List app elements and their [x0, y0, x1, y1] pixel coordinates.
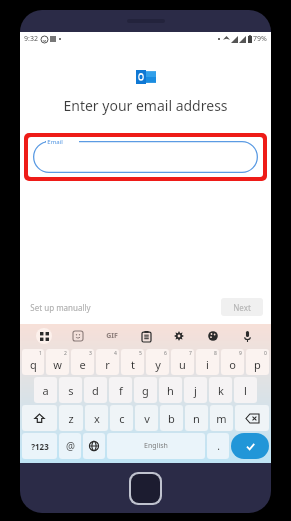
button[interactable]: ?123 [22, 433, 57, 459]
staticText: r [105, 357, 110, 372]
staticText: 3 [89, 350, 92, 357]
button[interactable]: Stickers [68, 326, 88, 346]
button[interactable]: a [34, 377, 57, 403]
staticText: p [254, 357, 261, 372]
button[interactable]: Clipboard [136, 326, 156, 346]
button[interactable]: f [109, 377, 132, 403]
staticText: q [30, 357, 37, 372]
button[interactable]: Settings [169, 326, 189, 346]
staticText: a [42, 383, 49, 398]
staticText: 4 [114, 350, 117, 357]
staticText: d [92, 383, 99, 398]
button[interactable]: 2 [46, 349, 69, 375]
staticText: w [53, 357, 62, 372]
button[interactable]: l [234, 377, 257, 403]
button[interactable]: Shift [22, 405, 57, 431]
staticText: b [168, 411, 175, 426]
staticText: ?123 [31, 441, 49, 452]
button[interactable]: @ [59, 433, 81, 459]
button[interactable]: Apps [34, 326, 54, 346]
button[interactable]: 5 [121, 349, 144, 375]
staticText: m [216, 411, 227, 426]
staticText: o [229, 357, 236, 372]
button[interactable]: Change language [83, 433, 105, 459]
button[interactable]: 3 [71, 349, 94, 375]
staticText: g [142, 383, 149, 398]
staticText: 9:32 [24, 34, 38, 44]
staticText: Email [47, 138, 63, 146]
button[interactable]: Set up manually [28, 300, 93, 315]
staticText: 2 [64, 350, 67, 357]
button[interactable]: m [210, 405, 233, 431]
button[interactable]: GIF [102, 326, 122, 346]
staticText: t [131, 357, 135, 372]
button[interactable]: b [160, 405, 183, 431]
staticText: s [68, 383, 74, 398]
button[interactable]: h [159, 377, 182, 403]
button[interactable]: Enter [231, 433, 269, 459]
staticText: . [217, 439, 220, 453]
staticText: Set up manually [30, 302, 91, 313]
staticText: v [144, 411, 150, 426]
button[interactable]: j [184, 377, 207, 403]
staticText: 6 [164, 350, 167, 357]
button[interactable]: d [84, 377, 107, 403]
staticText: i [206, 357, 209, 372]
button[interactable]: Home [131, 474, 160, 503]
button[interactable]: z [59, 405, 83, 431]
button[interactable]: Voice input [237, 326, 257, 346]
staticText: x [94, 411, 100, 426]
staticText: English [144, 441, 168, 451]
staticText: f [119, 383, 123, 398]
staticText: 7 [189, 350, 192, 357]
staticText: 8 [214, 350, 217, 357]
button[interactable]: Backspace [235, 405, 269, 431]
button[interactable]: 6 [146, 349, 169, 375]
button[interactable]: s [59, 377, 82, 403]
button[interactable]: 4 [96, 349, 119, 375]
staticText: l [244, 383, 247, 398]
staticText: GIF [106, 331, 118, 341]
staticText: 79% [253, 34, 267, 44]
button[interactable]: 8 [196, 349, 219, 375]
button[interactable]: n [185, 405, 208, 431]
button[interactable]: g [134, 377, 157, 403]
staticText: j [194, 383, 197, 398]
button[interactable]: v [135, 405, 158, 431]
staticText: @ [66, 439, 75, 453]
staticText: h [167, 383, 174, 398]
button[interactable]: 7 [171, 349, 194, 375]
staticText: 0 [264, 350, 267, 357]
button[interactable]: Next [221, 298, 263, 316]
button[interactable]: English [107, 433, 205, 459]
button[interactable]: Email [33, 141, 258, 173]
button[interactable]: . [207, 433, 229, 459]
staticText: 9 [239, 350, 242, 357]
button[interactable]: k [209, 377, 232, 403]
staticText: u [179, 357, 186, 372]
button[interactable]: Themes [203, 326, 223, 346]
staticText: Next [233, 302, 251, 313]
button[interactable]: 0 [246, 349, 269, 375]
staticText: 1 [39, 350, 42, 357]
button[interactable]: 1 [22, 349, 44, 375]
staticText: Enter your email address [63, 96, 228, 115]
button[interactable]: x [85, 405, 108, 431]
staticText: e [79, 357, 86, 372]
staticText: y [155, 357, 161, 372]
staticText: z [68, 411, 74, 426]
staticText: k [218, 383, 224, 398]
button[interactable]: 9 [221, 349, 244, 375]
staticText: c [119, 411, 125, 426]
staticText: n [193, 411, 200, 426]
staticText: 5 [139, 350, 142, 357]
button[interactable]: c [110, 405, 133, 431]
